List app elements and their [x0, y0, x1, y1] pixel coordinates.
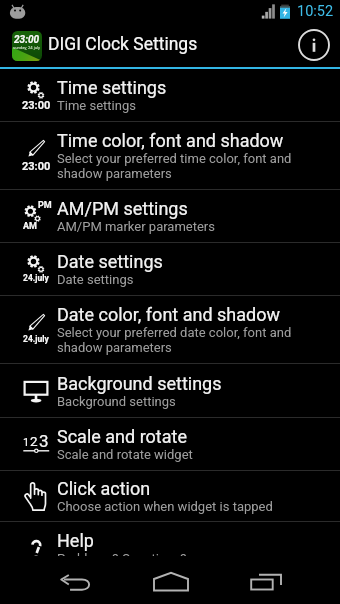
button[interactable]: 1 [0, 418, 340, 470]
staticText: 23:00 [14, 34, 40, 46]
staticText: Background settings [57, 394, 176, 409]
staticText: 10:52 [297, 3, 334, 20]
staticText: Time settings [57, 77, 167, 98]
button[interactable]: PM [0, 190, 340, 242]
staticText: 2 [30, 433, 38, 449]
staticText: PM [38, 200, 52, 211]
button[interactable]: Help [0, 522, 340, 574]
staticText: DIGI Clock Settings [48, 34, 198, 55]
staticText: Date settings [57, 272, 134, 287]
staticText: Scale and rotate widget [57, 447, 193, 462]
staticText: Help [57, 530, 94, 551]
staticText: AM/PM settings [57, 198, 188, 219]
staticText: Click action [57, 478, 151, 499]
staticText: Select your preferred time color, font a… [57, 151, 292, 181]
staticText: Time settings [57, 98, 136, 113]
button[interactable]: Back [54, 560, 98, 604]
staticText: Scale and rotate [57, 426, 187, 447]
staticText: Time color, font and shadow [57, 130, 284, 151]
button[interactable]: 23:00 [0, 122, 340, 189]
button[interactable]: 24.july [0, 243, 340, 295]
staticText: 23:00 [22, 99, 51, 112]
staticText: Date settings [57, 251, 163, 272]
staticText: Background settings [57, 373, 222, 394]
staticText: Select your preferred date color, font a… [57, 325, 292, 355]
staticText: AM/PM marker parameters [57, 219, 215, 234]
button[interactable]: Click action [0, 471, 340, 521]
staticText: 1 [23, 436, 30, 449]
staticText: Date color, font and shadow [57, 304, 280, 325]
button[interactable]: 23:00 [0, 69, 340, 121]
staticText: AM [23, 221, 37, 232]
staticText: Problems? Questions? [57, 551, 187, 566]
staticText: 23:00 [22, 160, 51, 173]
staticText: sunday, 24 july [13, 45, 41, 50]
button[interactable]: Recent apps [245, 560, 289, 604]
staticText: 24.july [23, 334, 49, 344]
button[interactable]: Home [149, 560, 193, 604]
staticText: 24.july [23, 273, 49, 283]
button[interactable]: Background settings [0, 364, 340, 417]
button[interactable]: About [292, 23, 336, 67]
staticText: 3 [39, 431, 49, 451]
staticText: Choose action when widget is tapped [57, 499, 273, 514]
button[interactable]: 24.july [0, 296, 340, 363]
